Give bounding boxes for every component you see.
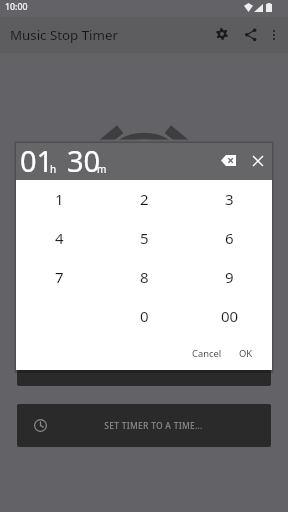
staticText: 6 (225, 228, 234, 248)
staticText: 2 (140, 189, 149, 209)
staticText: 8 (140, 267, 149, 287)
button[interactable]: 9 (187, 258, 272, 297)
button[interactable]: 4 (16, 219, 102, 258)
button[interactable]: Share (236, 17, 264, 53)
button[interactable]: 5 (102, 219, 187, 258)
button[interactable]: Cancel (184, 336, 230, 365)
button[interactable]: Backspace (213, 143, 243, 178)
button[interactable]: 2 (102, 180, 187, 219)
staticText: m (97, 162, 107, 176)
staticText: SET TIMER FOR A DURATION... (89, 359, 218, 371)
staticText: 7 (55, 267, 64, 287)
staticText: 01 (20, 141, 54, 178)
button[interactable]: 7 (16, 258, 102, 297)
button[interactable]: 3 (187, 180, 272, 219)
button[interactable]: 1 (16, 180, 102, 219)
staticText: Music Stop Timer (10, 26, 118, 44)
staticText: 0 (140, 306, 149, 326)
button[interactable]: More options (261, 17, 286, 53)
staticText: 00 (221, 306, 239, 326)
button[interactable]: 00 (187, 297, 272, 336)
button[interactable]: Close (243, 143, 272, 178)
staticText: 4 (55, 228, 64, 248)
button[interactable]: 0 (102, 297, 187, 336)
button[interactable]: 6 (187, 219, 272, 258)
staticText: h (50, 162, 57, 176)
staticText: 10:00 (5, 1, 28, 13)
button[interactable]: OK (231, 336, 261, 365)
button[interactable]: 8 (102, 258, 187, 297)
staticText: OK (239, 347, 253, 360)
staticText: 30 (67, 141, 101, 178)
staticText: 1 (55, 189, 64, 209)
staticText: 3 (225, 189, 234, 209)
button[interactable]: SET TIMER TO A TIME... (17, 404, 271, 447)
staticText: SET TIMER TO A TIME... (104, 420, 203, 432)
button[interactable]: Settings (206, 17, 238, 53)
staticText: 9 (225, 267, 234, 287)
staticText: Cancel (192, 347, 222, 360)
button[interactable]: SET TIMER FOR A DURATION... (17, 343, 271, 386)
staticText: 5 (140, 228, 149, 248)
